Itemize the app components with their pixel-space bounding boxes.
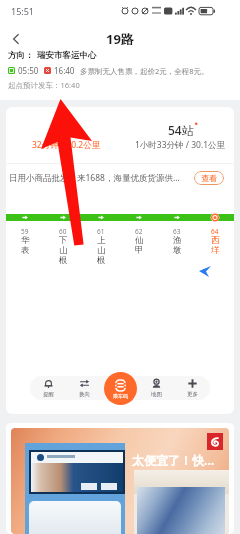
staticText: 13站: [54, 122, 80, 138]
staticText: 仙: [135, 235, 144, 245]
staticText: 05:50: [18, 65, 39, 76]
staticText: 根: [59, 255, 68, 265]
button[interactable]: 更多: [174, 378, 210, 398]
button[interactable]: 日用小商品批发？来1688，海量优质货源供…: [6, 164, 234, 191]
staticText: 上: [97, 235, 106, 245]
staticText: 15:51: [11, 5, 35, 17]
staticText: 表: [21, 245, 30, 255]
staticText: 地图: [151, 391, 162, 398]
button[interactable]: 太便宜了！快…: [11, 428, 229, 534]
button[interactable]: 63: [158, 227, 196, 255]
staticText: 19路: [106, 30, 134, 48]
button[interactable]: 59: [6, 227, 44, 255]
staticText: 甲: [135, 245, 144, 255]
staticText: 方向：: [8, 50, 34, 61]
staticText: 根: [97, 255, 106, 265]
staticText: 更多: [187, 391, 198, 398]
staticText: 山: [97, 245, 106, 255]
staticText: 起点预计发车：16:40: [8, 80, 80, 90]
button[interactable]: 64: [196, 227, 234, 255]
staticText: 提醒: [43, 391, 54, 398]
staticText: 西: [211, 235, 220, 245]
staticText: 60: [59, 227, 67, 235]
staticText: 查看: [201, 173, 217, 183]
staticText: 华: [21, 235, 30, 245]
button[interactable]: 提醒: [30, 378, 66, 398]
staticText: 渔: [173, 235, 182, 245]
staticText: 墩: [173, 245, 182, 255]
staticText: 64: [211, 227, 219, 235]
staticText: 换向: [79, 391, 90, 398]
staticText: 下: [59, 235, 68, 245]
button[interactable]: 地图: [138, 378, 174, 398]
staticText: 垟: [211, 245, 220, 255]
staticText: 32分钟 / 10.2公里: [32, 139, 101, 151]
button[interactable]: 61: [82, 227, 120, 265]
button[interactable]: Back: [0, 25, 32, 53]
staticText: 山: [59, 245, 68, 255]
staticText: 1小时33分钟 / 30.1公里: [135, 139, 226, 151]
staticText: 54站: [168, 122, 194, 138]
staticText: 61: [97, 227, 105, 235]
button[interactable]: 乘车码: [104, 372, 137, 405]
staticText: 63: [173, 227, 181, 235]
button[interactable]: 62: [120, 227, 158, 255]
staticText: 16:40: [54, 65, 75, 76]
button[interactable]: 60: [44, 227, 82, 265]
staticText: 日用小商品批发？来1688，海量优质货源供…: [9, 172, 196, 184]
staticText: 瑞安市客运中心: [37, 50, 97, 61]
staticText: 太便宜了！快…: [132, 452, 215, 468]
button[interactable]: 换向: [66, 378, 102, 398]
staticText: 62: [135, 227, 143, 235]
staticText: 59: [21, 227, 29, 235]
staticText: 乘车码: [113, 393, 128, 399]
staticText: 多票制无人售票，起价2元，全程8元。: [80, 66, 209, 76]
